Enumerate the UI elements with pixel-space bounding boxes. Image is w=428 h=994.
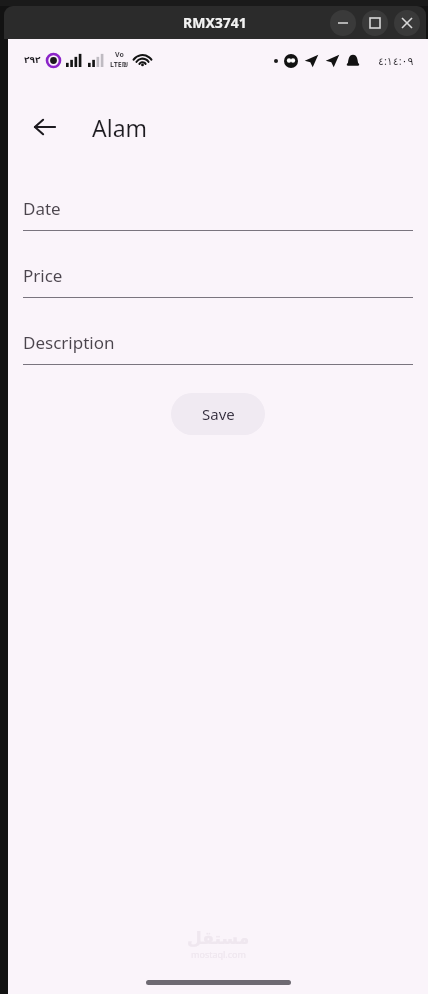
button[interactable]: Save — [171, 393, 265, 435]
button[interactable]: Date — [23, 197, 413, 231]
staticText: mostaql.com — [191, 948, 246, 960]
staticText: LTE₪ — [110, 60, 129, 70]
button[interactable]: Maximize — [362, 10, 388, 36]
staticText: ٢٩٢ — [24, 55, 41, 65]
staticText: Date — [23, 197, 61, 220]
button[interactable]: Minimize — [330, 10, 356, 36]
staticText: Price — [23, 264, 63, 287]
staticText: RMX3741 — [183, 13, 247, 32]
staticText: Vo — [115, 50, 124, 60]
staticText: مستقل — [187, 928, 250, 948]
staticText: Description — [23, 331, 115, 354]
button[interactable]: Price — [23, 264, 413, 298]
button[interactable]: Close — [394, 10, 420, 36]
button[interactable]: Description — [23, 331, 413, 365]
staticText: Save — [202, 404, 235, 424]
staticText: ٤:١٤:٠٩ — [378, 53, 414, 68]
button[interactable]: Back — [22, 104, 68, 150]
staticText: Alam — [92, 112, 148, 143]
